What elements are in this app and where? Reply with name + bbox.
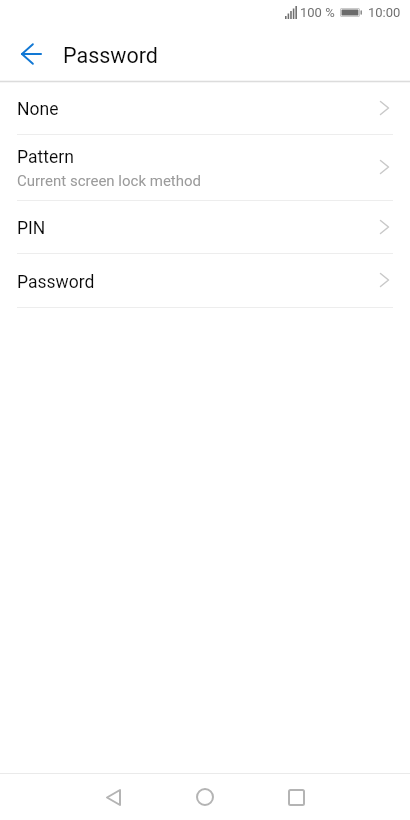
button[interactable]: Pattern <box>0 135 410 201</box>
staticText: Password <box>17 272 95 293</box>
staticText: PIN <box>17 218 46 239</box>
staticText: None <box>17 99 59 120</box>
button[interactable]: Back <box>90 774 137 820</box>
button[interactable]: Recents <box>273 774 319 820</box>
staticText: Pattern <box>17 147 74 168</box>
staticText: 10:00 <box>368 5 401 20</box>
staticText: 100 % <box>300 5 335 20</box>
staticText: Current screen lock method <box>17 172 202 190</box>
button[interactable]: PIN <box>0 201 410 254</box>
button[interactable]: Home <box>182 774 228 820</box>
button[interactable]: None <box>0 82 410 135</box>
button[interactable]: Back <box>5 25 58 81</box>
button[interactable]: Password <box>0 254 410 308</box>
staticText: Password <box>63 43 158 68</box>
